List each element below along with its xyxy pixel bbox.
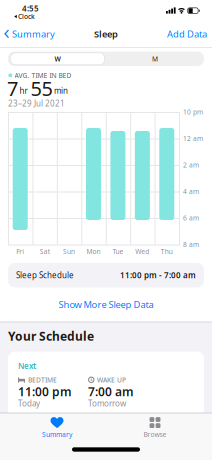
staticText: 7:00 am [88,383,134,399]
staticText: 12 am [183,134,203,143]
staticText: 4 am [183,187,199,196]
staticText: Summary [42,430,72,439]
staticText: Fri [16,247,24,256]
staticText: Thu [161,247,173,256]
staticText: Sleep [94,28,118,40]
button[interactable]: M [107,52,203,66]
staticText: Sat [40,247,50,256]
staticText: Tue [112,247,123,256]
staticText: Show More Sleep Data [58,298,153,311]
button[interactable]: Add Data [163,27,207,41]
staticText: 7 [7,75,18,102]
staticText: 55 [30,75,52,102]
staticText: min [54,85,68,96]
staticText: Next [18,361,36,371]
staticText: Add Data [167,28,207,40]
staticText: Your Schedule [8,328,94,344]
button[interactable]: Summary [22,414,92,442]
staticText: Wed [135,247,149,256]
staticText: Sun [63,247,75,256]
staticText: Sleep Schedule [16,270,74,280]
staticText: Mon [86,247,100,256]
staticText: Summary [12,28,55,40]
staticText: 10 pm [183,108,203,116]
button[interactable]: Show More Sleep Data [46,297,166,311]
button[interactable]: Sleep Schedule [8,263,204,287]
staticText: 4:55 [22,3,39,14]
staticText: hr [19,85,27,96]
staticText: Clock [18,12,35,21]
staticText: 11:00 pm [18,383,72,399]
staticText: M [152,54,158,63]
staticText: Browse [143,430,166,439]
staticText: BEDTIME [28,375,57,384]
staticText: Today [18,398,40,409]
staticText: 23–29 Jul 2021 [8,98,65,109]
button[interactable]: W [9,52,105,66]
staticText: 2 am [183,161,199,169]
staticText: AVG. TIME IN BED [14,71,71,80]
button[interactable]: Summary [4,27,56,41]
staticText: 8 am [183,240,199,249]
button[interactable]: Browse [120,414,190,442]
staticText: WAKE UP [97,375,126,384]
staticText: 6 am [183,214,199,222]
staticText: 11:00 pm - 7:00 am [120,270,196,280]
staticText: Tomorrow [88,398,126,409]
staticText: W [54,54,60,63]
